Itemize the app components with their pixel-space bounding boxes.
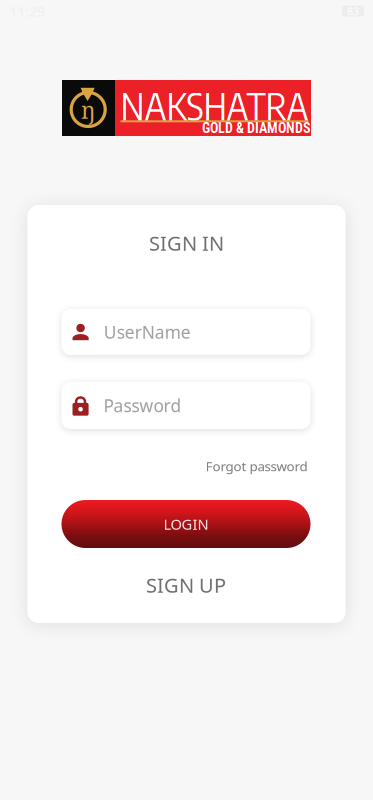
staticText: SIGN UP xyxy=(146,571,226,599)
button[interactable]: Password xyxy=(61,382,310,429)
staticText: Password xyxy=(104,394,182,417)
staticText: SIGN IN xyxy=(149,229,224,257)
staticText: 83 xyxy=(347,4,359,18)
staticText: LOGIN xyxy=(163,514,208,534)
staticText: ŋ xyxy=(81,95,95,125)
staticText: Forgot password xyxy=(205,457,307,475)
button[interactable]: SIGN UP xyxy=(61,573,310,597)
button[interactable]: UserName xyxy=(61,309,310,355)
button[interactable]: Forgot password xyxy=(167,455,307,477)
staticText: GOLD & DIAMONDS xyxy=(202,120,311,136)
staticText: UserName xyxy=(104,320,191,344)
button[interactable]: LOGIN xyxy=(61,500,310,548)
staticText: NAKSHATRA xyxy=(120,82,308,129)
